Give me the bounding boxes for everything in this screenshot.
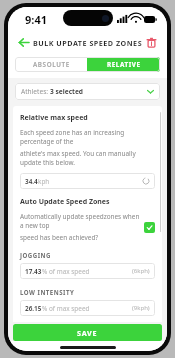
- staticText: (9kph): [132, 304, 150, 312]
- staticText: % of max speed: [42, 267, 90, 276]
- button[interactable]: SAVE: [13, 324, 162, 341]
- staticText: BULK UPDATE SPEED ZONES: [33, 38, 143, 48]
- button[interactable]: Delete: [143, 34, 160, 51]
- staticText: SAVE: [77, 328, 98, 338]
- staticText: 26.15: [25, 304, 42, 313]
- staticText: JOGGING: [20, 251, 51, 259]
- staticText: speed has been achieved?: [20, 233, 99, 242]
- staticText: Relative max speed: [20, 113, 88, 123]
- button[interactable]: Athletes:: [15, 83, 160, 100]
- button[interactable]: 17.43: [20, 263, 155, 279]
- staticText: Auto Update Speed Zones: [20, 197, 110, 207]
- staticText: 3 selected: [50, 87, 84, 96]
- staticText: Athletes:: [21, 87, 50, 96]
- staticText: (6kph): [132, 267, 150, 275]
- staticText: 34.4: [25, 177, 38, 186]
- button[interactable]: ABSOLUTE: [15, 57, 87, 72]
- staticText: Each speed zone has an increasing percen…: [20, 128, 155, 146]
- staticText: LOW INTENSITY: [20, 288, 75, 296]
- staticText: 9:41: [25, 12, 47, 27]
- button[interactable]: Back: [15, 34, 32, 51]
- button[interactable]: Auto update enabled: [144, 222, 155, 233]
- staticText: Automatically update speedzones when a n…: [20, 212, 140, 230]
- button[interactable]: 26.15: [20, 300, 155, 316]
- staticText: % of max speed: [42, 304, 90, 313]
- staticText: kph: [38, 177, 50, 186]
- staticText: athlete's max speed. You can manually up…: [20, 149, 155, 167]
- staticText: RELATIVE: [107, 60, 141, 69]
- button[interactable]: 34.4: [20, 173, 155, 189]
- staticText: 17.43: [25, 267, 42, 276]
- button[interactable]: RELATIVE: [87, 57, 160, 72]
- staticText: ABSOLUTE: [33, 60, 70, 69]
